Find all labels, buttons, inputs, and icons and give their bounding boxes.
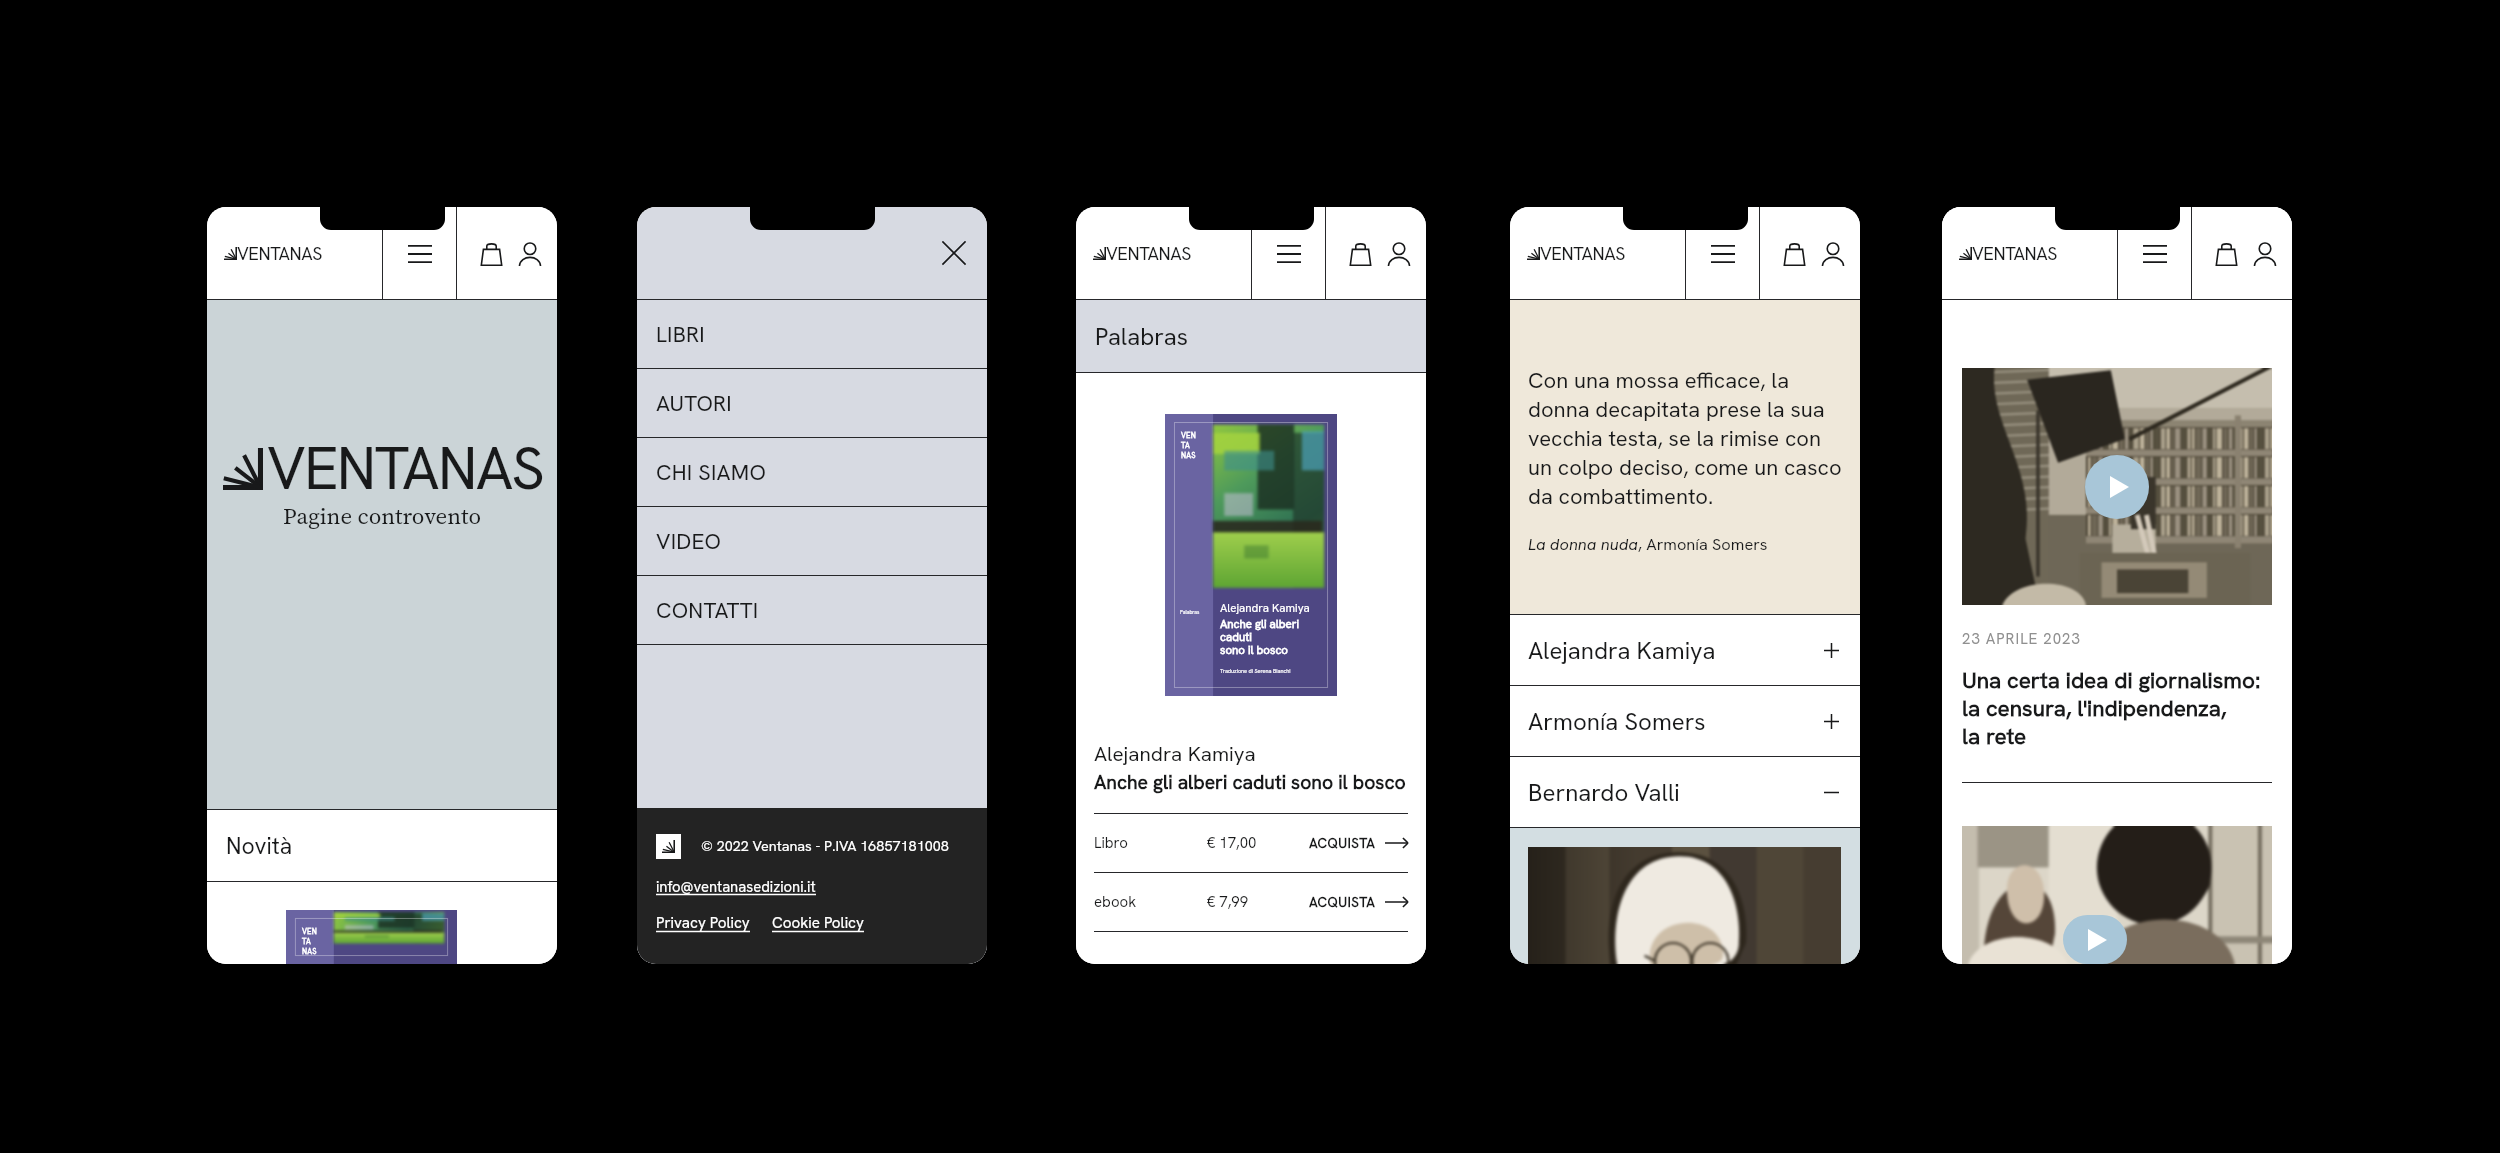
staticText: Alejandra Kamiya — [1220, 600, 1310, 615]
staticText: ACQUISTA — [1309, 893, 1376, 911]
staticText: VIDEO — [656, 527, 722, 556]
button[interactable]: VIDEO — [637, 507, 987, 575]
button[interactable]: Menu — [1252, 207, 1325, 300]
staticText: CONTATTI — [656, 596, 759, 625]
staticText: Traduzione di Serena Bianchi — [1220, 667, 1291, 674]
button[interactable]: Menu — [1686, 207, 1759, 300]
staticText: La donna nuda — [1528, 534, 1638, 555]
button[interactable]: Play video — [2063, 915, 2127, 964]
staticText: 23 APRILE 2023 — [1962, 629, 2081, 649]
button[interactable]: CONTATTI — [637, 576, 987, 644]
button[interactable]: VEN — [1165, 414, 1337, 696]
staticText: ACQUISTA — [1309, 834, 1376, 852]
staticText: VENTANAS — [237, 242, 323, 265]
button[interactable]: Cart — [1773, 233, 1815, 275]
button[interactable]: Alejandra Kamiya — [1510, 615, 1860, 685]
staticText: VENTANAS — [1540, 242, 1626, 265]
staticText: , Armonía Somers — [1638, 534, 1768, 555]
staticText: CHI SIAMO — [656, 458, 767, 487]
staticText: AUTORI — [656, 389, 732, 418]
button[interactable]: Account — [1381, 233, 1416, 275]
button[interactable]: Cart — [2205, 233, 2247, 275]
button[interactable]: VENTANAS — [1510, 207, 1685, 300]
button[interactable]: Menu — [383, 207, 456, 300]
button[interactable]: VENTANAS — [1076, 207, 1251, 300]
staticText: ebook — [1094, 892, 1207, 912]
button[interactable]: Armonía Somers — [1510, 686, 1860, 756]
button[interactable]: Cookie Policy — [772, 913, 864, 933]
button[interactable]: Account — [512, 233, 547, 275]
button[interactable]: LIBRI — [637, 300, 987, 368]
staticText: Pagine controvento — [283, 500, 481, 531]
staticText: VENTANAS — [1106, 242, 1192, 265]
staticText: NAS — [1181, 450, 1196, 460]
staticText: Libro — [1094, 833, 1207, 853]
staticText: Anche gli alberi caduti sono il bosco — [1094, 770, 1406, 795]
button[interactable]: Account — [2247, 233, 2282, 275]
staticText: Anche gli alberi caduti sono il bosco — [1220, 616, 1300, 658]
staticText: TA — [1181, 440, 1190, 450]
button[interactable] — [1528, 847, 1841, 964]
staticText: Bernardo Valli — [1528, 777, 1821, 808]
staticText: LIBRI — [656, 320, 705, 349]
staticText: Alejandra Kamiya — [1528, 635, 1821, 666]
staticText: € 17,00 — [1207, 833, 1309, 853]
staticText: VENTANAS — [267, 430, 544, 507]
button[interactable]: Novità — [207, 810, 557, 881]
button[interactable]: CHI SIAMO — [637, 438, 987, 506]
staticText: VEN — [302, 926, 317, 936]
button[interactable]: Account — [1815, 233, 1850, 275]
button[interactable]: Play video — [2085, 455, 2149, 519]
staticText: € 7,99 — [1207, 892, 1309, 912]
staticText: Armonía Somers — [1528, 706, 1821, 737]
button[interactable]: Cart — [1339, 233, 1381, 275]
button[interactable]: VEN — [286, 910, 457, 964]
staticText: TA — [302, 936, 311, 946]
staticText: NAS — [302, 946, 317, 956]
button[interactable]: Menu — [2118, 207, 2191, 300]
staticText: Palabras — [1095, 321, 1188, 352]
staticText: Con una mossa efficace, la donna decapit… — [1528, 366, 1842, 511]
button[interactable]: VENTANAS — [207, 207, 382, 300]
button[interactable]: Play video — [1962, 826, 2272, 964]
button[interactable]: Privacy Policy — [656, 913, 750, 933]
button[interactable]: Cart — [470, 233, 512, 275]
button[interactable]: VENTANAS — [1942, 207, 2117, 300]
staticText: © 2022 Ventanas - P.IVA 16857181008 — [701, 837, 949, 856]
button[interactable]: Bernardo Valli — [1510, 757, 1860, 827]
button[interactable]: info@ventanasedizioni.it — [656, 877, 816, 896]
staticText: VEN — [1181, 430, 1196, 440]
button[interactable]: Libro — [1094, 814, 1408, 872]
button[interactable]: Play video — [1962, 368, 2272, 605]
button[interactable]: ebook — [1094, 873, 1408, 931]
staticText: Una certa idea di giornalismo: la censur… — [1962, 665, 2261, 751]
button[interactable]: AUTORI — [637, 369, 987, 437]
staticText: Novità — [226, 831, 293, 861]
staticText: Alejandra Kamiya — [1094, 740, 1256, 767]
staticText: Palabras — [1180, 609, 1200, 616]
staticText: VENTANAS — [1972, 242, 2058, 265]
button[interactable]: Close menu — [932, 231, 976, 275]
